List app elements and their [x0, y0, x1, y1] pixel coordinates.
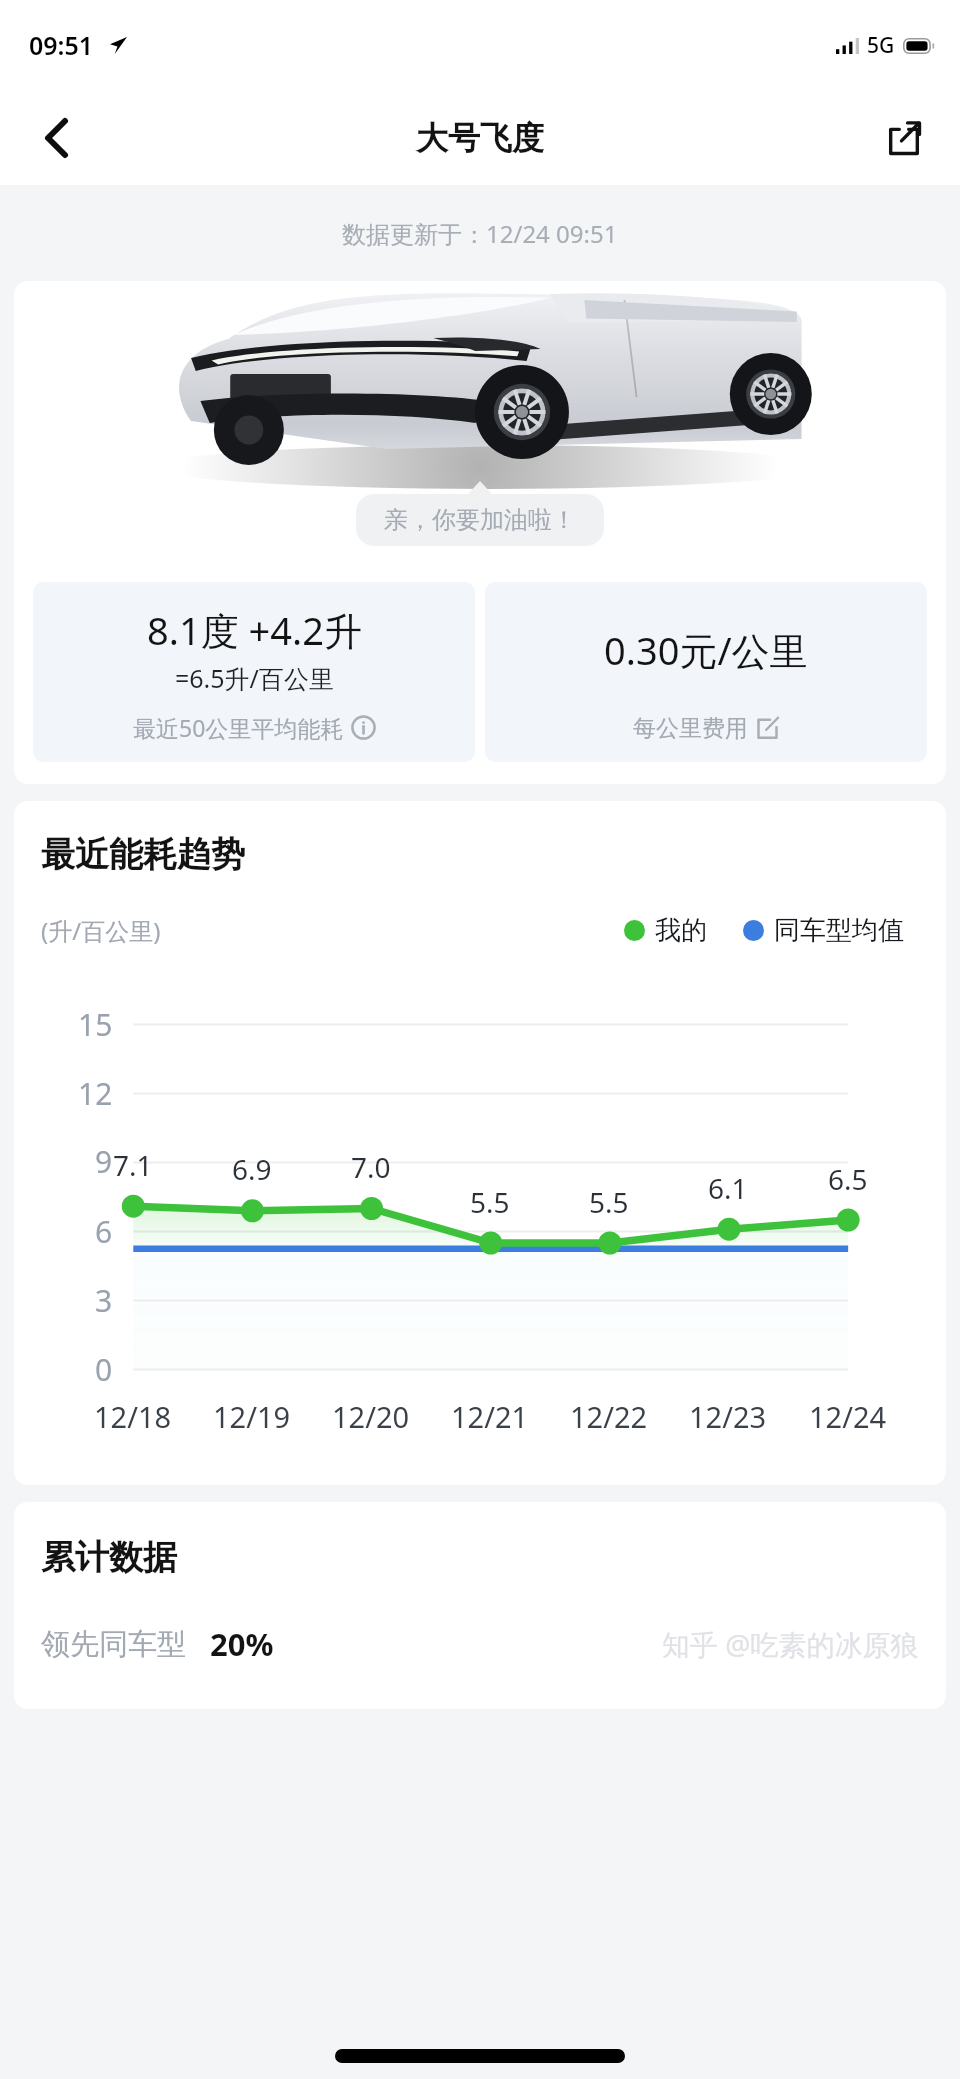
staticText: 12/20: [332, 1397, 410, 1436]
staticText: 5.5: [470, 1183, 510, 1221]
staticText: =6.5升/百公里: [175, 661, 334, 695]
staticText: 每公里费用: [633, 714, 748, 743]
staticText: 7.0: [351, 1148, 391, 1186]
button[interactable]: Share: [874, 108, 934, 168]
staticText: 15: [78, 1004, 113, 1045]
staticText: 6.9: [232, 1150, 272, 1188]
staticText: 最近50公里平均能耗: [133, 712, 344, 743]
staticText: 12/19: [213, 1397, 291, 1436]
staticText: 12/21: [451, 1397, 529, 1436]
staticText: 我的: [655, 914, 707, 947]
staticText: 12/23: [689, 1397, 767, 1436]
staticText: 09:51: [29, 28, 94, 62]
staticText: (升/百公里): [41, 914, 161, 947]
staticText: 数据更新于：12/24 09:51: [342, 217, 618, 250]
staticText: 累计数据: [41, 1536, 177, 1579]
staticText: 同车型均值: [774, 914, 904, 947]
staticText: 12/22: [570, 1397, 648, 1436]
staticText: 领先同车型: [41, 1626, 186, 1663]
button[interactable]: Back: [26, 108, 86, 168]
button[interactable]: 我的: [624, 914, 707, 947]
staticText: 最近能耗趋势: [41, 833, 245, 876]
staticText: 0: [95, 1349, 113, 1390]
staticText: 5G: [867, 31, 895, 60]
staticText: 6: [95, 1211, 113, 1252]
staticText: 12/24: [809, 1397, 887, 1436]
staticText: 3: [95, 1280, 113, 1321]
staticText: 9: [95, 1141, 113, 1182]
staticText: 知乎 @吃素的冰原狼: [662, 1625, 919, 1663]
staticText: 6.5: [828, 1160, 868, 1198]
staticText: 7.1: [113, 1146, 153, 1184]
staticText: 5.5: [589, 1183, 629, 1221]
staticText: 大号飞度: [416, 118, 544, 158]
staticText: 6.1: [708, 1169, 748, 1207]
button[interactable]: 8.1度 +4.2升: [33, 582, 475, 762]
button[interactable]: 0.30元/公里: [485, 582, 927, 762]
staticText: 0.30元/公里: [604, 624, 808, 676]
staticText: 8.1度 +4.2升: [147, 604, 362, 656]
staticText: 亲，你要加油啦！: [384, 505, 576, 535]
button[interactable]: 同车型均值: [743, 914, 904, 947]
staticText: 12/18: [94, 1397, 172, 1436]
staticText: 12: [78, 1073, 113, 1114]
staticText: 20%: [210, 1623, 274, 1665]
